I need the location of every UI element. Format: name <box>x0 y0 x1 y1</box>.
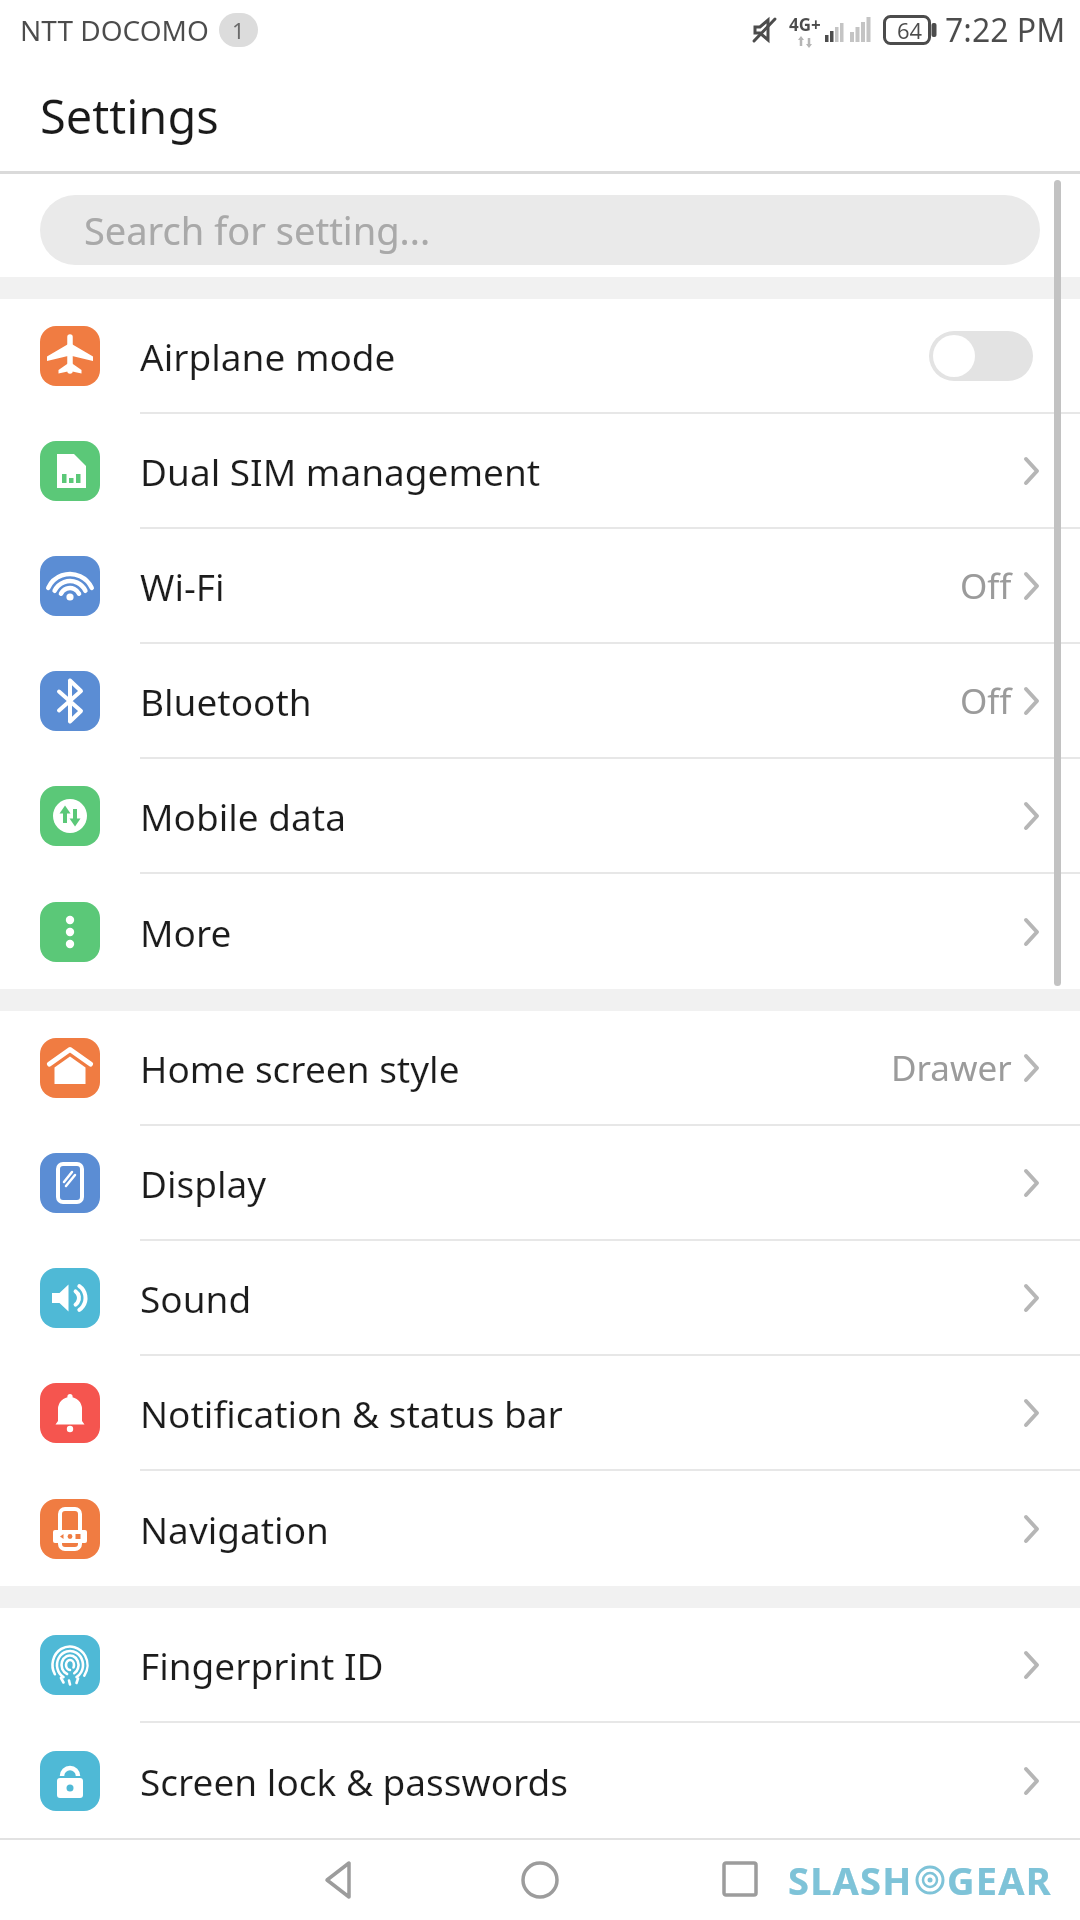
staticText: Off <box>960 562 1012 610</box>
button[interactable]: Fingerprint ID <box>0 1608 1080 1721</box>
button[interactable] <box>322 1860 358 1900</box>
staticText: 64 <box>897 15 923 45</box>
staticText: Display <box>140 1158 267 1208</box>
button[interactable] <box>722 1861 758 1897</box>
button[interactable]: Notification & status bar <box>0 1356 1080 1469</box>
button[interactable]: Mobile data <box>0 759 1080 872</box>
button[interactable]: Bluetooth <box>0 644 1080 757</box>
button[interactable]: More <box>0 874 1080 989</box>
button[interactable]: Wi-Fi <box>0 529 1080 642</box>
button[interactable]: Navigation <box>0 1471 1080 1586</box>
button[interactable]: Search for setting... <box>40 195 1040 265</box>
staticText: Sound <box>140 1273 252 1323</box>
button[interactable] <box>520 1860 560 1900</box>
staticText: Wi-Fi <box>140 561 225 611</box>
staticText: Settings <box>40 84 219 148</box>
staticText: Fingerprint ID <box>140 1640 384 1690</box>
button[interactable]: Sound <box>0 1241 1080 1354</box>
staticText: Navigation <box>140 1504 329 1554</box>
button[interactable]: Screen lock & passwords <box>0 1723 1080 1838</box>
staticText: Notification & status bar <box>140 1388 563 1438</box>
staticText: NTT DOCOMO <box>20 11 209 49</box>
staticText: GEAR <box>947 1854 1052 1906</box>
staticText: Search for setting... <box>84 204 431 256</box>
button[interactable]: Display <box>0 1126 1080 1239</box>
staticText: Airplane mode <box>140 331 396 381</box>
button[interactable] <box>929 331 1033 381</box>
button[interactable]: Dual SIM management <box>0 414 1080 527</box>
staticText: 1 <box>232 15 245 45</box>
staticText: More <box>140 907 232 957</box>
staticText: Bluetooth <box>140 676 312 726</box>
staticText: 4G+ <box>789 13 821 36</box>
staticText: Screen lock & passwords <box>140 1756 569 1806</box>
button[interactable]: Airplane mode <box>0 299 1080 412</box>
staticText: 7:22 PM <box>945 8 1066 52</box>
staticText: Dual SIM management <box>140 446 541 496</box>
button[interactable]: Home screen style <box>0 1011 1080 1124</box>
staticText: SLASH <box>788 1854 913 1906</box>
staticText: Home screen style <box>140 1043 460 1093</box>
staticText: Drawer <box>891 1044 1012 1092</box>
staticText: Mobile data <box>140 791 346 841</box>
staticText: Off <box>960 677 1012 725</box>
